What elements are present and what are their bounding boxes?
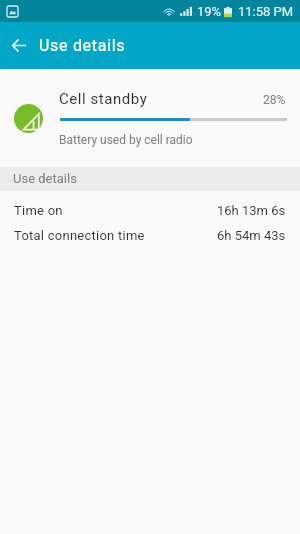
button[interactable]: Time on [0, 198, 300, 223]
staticText: 16h 13m 6s [217, 203, 286, 218]
staticText: Cell standby [59, 90, 148, 108]
staticText: Use details [13, 171, 77, 186]
staticText: Time on [14, 203, 63, 218]
staticText: 19% [197, 4, 222, 19]
staticText: Total connection time [14, 228, 145, 243]
button[interactable]: Total connection time [0, 223, 300, 248]
staticText: 11:58 PM [238, 4, 294, 19]
staticText: 28% [263, 93, 286, 107]
button[interactable]: Back [0, 22, 38, 69]
staticText: Battery used by cell radio [59, 133, 193, 147]
staticText: Use details [39, 36, 126, 55]
staticText: 6h 54m 43s [217, 228, 286, 243]
